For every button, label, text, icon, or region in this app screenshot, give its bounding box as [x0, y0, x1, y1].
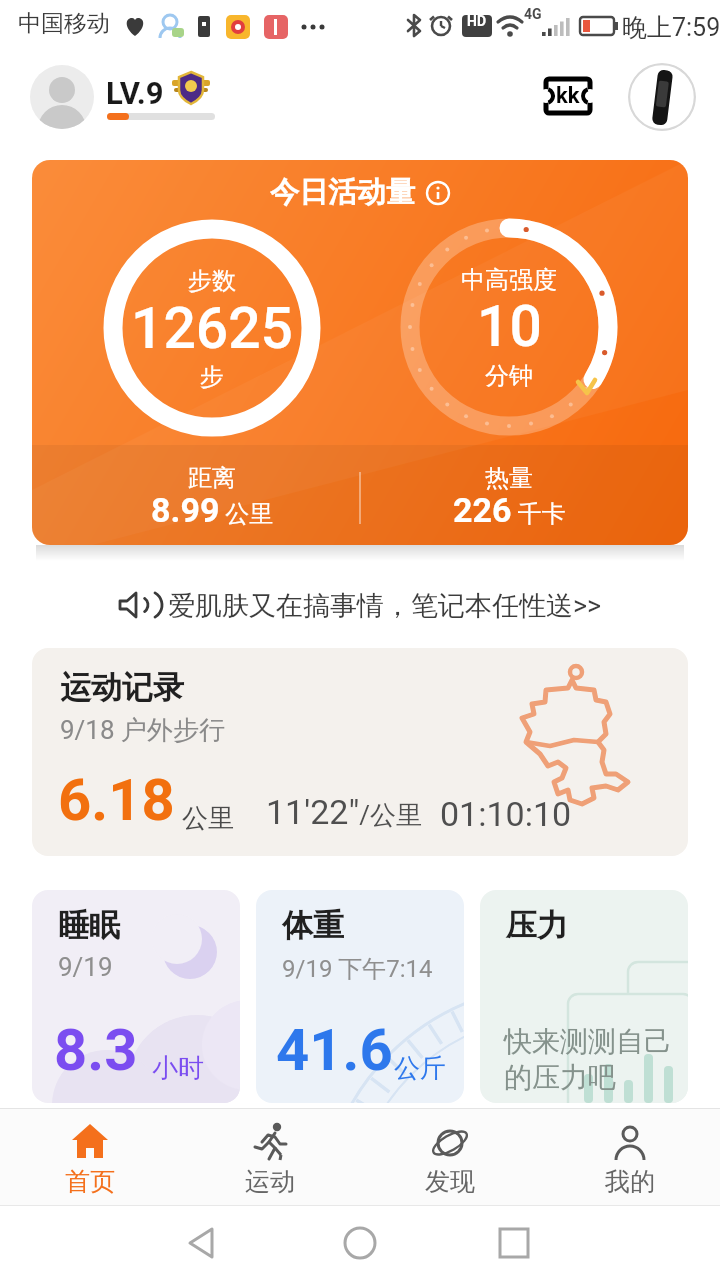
button[interactable]: 运动记录: [32, 648, 688, 856]
staticText: 8.3: [54, 1016, 138, 1084]
staticText: 分钟: [485, 361, 533, 391]
staticText: 热量: [485, 463, 533, 493]
staticText: 运动记录: [60, 668, 184, 707]
staticText: 压力: [506, 906, 568, 945]
button[interactable]: [325, 1215, 395, 1271]
staticText: 10: [477, 293, 542, 359]
staticText: 中高强度: [461, 265, 557, 295]
staticText: 晚上7:59: [622, 12, 720, 43]
button[interactable]: [30, 65, 94, 129]
staticText: 中国移动: [18, 9, 110, 38]
button[interactable]: 压力: [480, 890, 688, 1103]
button[interactable]: [479, 1215, 549, 1271]
button[interactable]: [170, 1215, 240, 1271]
staticText: 8.99 公里: [151, 490, 274, 530]
staticText: 公里: [182, 802, 234, 835]
staticText: 9/19 下午7:14: [282, 954, 433, 984]
button[interactable]: 爱肌肤又在搞事情，笔记本任性送>>: [0, 583, 720, 629]
staticText: 4G: [524, 6, 542, 22]
staticText: 首页: [65, 1166, 115, 1197]
staticText: 睡眠: [58, 906, 120, 945]
staticText: 步: [200, 362, 224, 392]
staticText: 我的: [605, 1166, 655, 1197]
staticText: 运动: [245, 1166, 295, 1197]
button[interactable]: 我的: [570, 1122, 690, 1204]
staticText: 发现: [425, 1166, 475, 1197]
button[interactable]: kk: [544, 77, 592, 115]
staticText: 快来测测自己: [504, 1024, 672, 1059]
staticText: 9/19: [58, 952, 113, 982]
staticText: 公斤: [394, 1052, 446, 1085]
button[interactable]: [628, 63, 696, 131]
staticText: 6.18: [58, 766, 175, 834]
staticText: 今日活动量: [270, 174, 415, 211]
button[interactable]: 今日活动量: [32, 160, 688, 545]
button[interactable]: LV.9: [0, 0, 58, 36]
staticText: 距离: [188, 463, 236, 493]
staticText: 爱肌肤又在搞事情，笔记本任性送>>: [168, 589, 602, 623]
button[interactable]: 发现: [390, 1122, 510, 1204]
button[interactable]: 运动: [210, 1122, 330, 1204]
staticText: 226 千卡: [453, 490, 566, 530]
staticText: 的压力吧: [504, 1060, 616, 1095]
staticText: 01:10:10: [440, 794, 572, 834]
staticText: 9/18 户外步行: [60, 714, 226, 747]
staticText: 小时: [152, 1052, 204, 1085]
button[interactable]: 睡眠: [32, 890, 240, 1103]
staticText: 41.6: [276, 1016, 393, 1084]
staticText: 步数: [188, 266, 236, 296]
staticText: 12625: [131, 295, 293, 361]
staticText: HD: [467, 13, 487, 29]
button[interactable]: 首页: [30, 1122, 150, 1204]
staticText: 体重: [282, 906, 344, 945]
staticText: 11'22"/公里: [266, 792, 422, 832]
button[interactable]: 体重: [256, 890, 464, 1103]
staticText: kk: [556, 83, 580, 109]
